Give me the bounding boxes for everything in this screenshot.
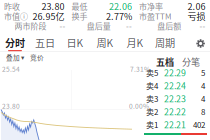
staticText: 市净率	[139, 0, 163, 12]
staticText: 7.31%	[130, 64, 150, 74]
staticText: 5	[201, 67, 205, 78]
button[interactable]: 周K	[90, 36, 120, 51]
staticText: 卖1	[146, 119, 158, 130]
button[interactable]: 分时	[0, 36, 30, 51]
button[interactable]: 周期	[150, 36, 180, 51]
staticText: 盘后量	[87, 20, 111, 32]
staticText: --	[126, 20, 132, 32]
staticText: 22.23	[164, 92, 186, 105]
staticText: 4	[201, 93, 205, 104]
button[interactable]: 月K	[120, 36, 150, 51]
staticText: 分时	[5, 35, 25, 50]
staticText: 五档	[156, 55, 174, 68]
button[interactable]: 五档	[152, 56, 178, 67]
staticText: 两市阶段	[14, 20, 46, 32]
button[interactable]: 日K	[60, 36, 90, 51]
staticText: 卖3	[146, 93, 158, 104]
staticText: 22.06	[109, 0, 132, 13]
staticText: 市值ⓘ	[4, 10, 28, 22]
staticText: 换手	[71, 10, 87, 22]
staticText: 最低	[71, 0, 87, 12]
staticText: 22.22	[164, 105, 186, 118]
staticText: 分笔	[182, 55, 200, 68]
staticText: 4	[201, 80, 205, 91]
staticText: 23.80	[41, 0, 64, 13]
staticText: 叠加 ▾	[6, 52, 24, 62]
staticText: 26.95亿	[32, 9, 64, 22]
staticText: 五日	[35, 35, 55, 50]
staticText: 卖4	[146, 80, 158, 91]
staticText: 市盈TTM	[139, 10, 171, 22]
button[interactable]: 分笔	[178, 56, 204, 67]
staticText: 卖5	[146, 67, 158, 78]
staticText: 2.06	[187, 0, 205, 13]
button[interactable]: 竞价	[30, 52, 44, 62]
staticText: 周K	[96, 35, 113, 50]
staticText: 昨收	[4, 0, 20, 12]
staticText: 402	[193, 119, 205, 130]
staticText: 2.77%	[106, 9, 132, 22]
button[interactable]: 五日	[30, 36, 60, 51]
staticText: 日K	[66, 35, 83, 50]
staticText: 22.29	[164, 66, 186, 79]
staticText: 23.80	[2, 101, 20, 111]
staticText: 周期	[155, 35, 175, 50]
staticText: 竞价	[30, 52, 44, 62]
staticText: 22.21	[164, 118, 186, 131]
staticText: 0.00%	[129, 101, 149, 111]
button[interactable]: Chart settings	[196, 39, 205, 48]
staticText: 月K	[126, 35, 143, 50]
staticText: --	[199, 20, 205, 32]
staticText: 盘后额	[157, 20, 181, 32]
staticText: 卖2	[146, 106, 158, 117]
button[interactable]: 叠加 ▾	[6, 52, 24, 62]
staticText: 22.24	[164, 79, 186, 92]
staticText: 8	[201, 106, 205, 117]
staticText: 25.54	[2, 64, 20, 74]
staticText: --	[59, 20, 65, 32]
staticText: 亏损	[187, 9, 205, 22]
